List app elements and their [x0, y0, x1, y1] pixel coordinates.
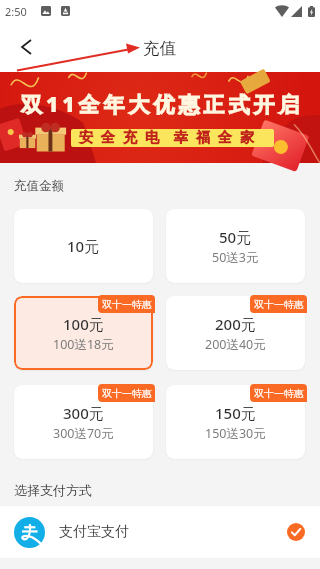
- staticText: 300元: [63, 403, 104, 423]
- staticText: 50元: [219, 227, 252, 247]
- staticText: 支付宝支付: [59, 523, 129, 541]
- staticText: 充值: [143, 38, 176, 59]
- staticText: 200元: [215, 314, 256, 334]
- staticText: 150送30元: [205, 425, 266, 442]
- staticText: 幸: [174, 129, 188, 147]
- button[interactable]: Back: [2, 23, 50, 71]
- staticText: 200送40元: [205, 336, 266, 353]
- staticText: 双十一特惠: [254, 298, 304, 311]
- staticText: 安: [79, 129, 93, 147]
- staticText: 2:50: [5, 4, 27, 19]
- staticText: 双十一特惠: [102, 387, 152, 400]
- staticText: 充值金额: [14, 178, 64, 194]
- staticText: 双11全年大优惠正式开启: [21, 90, 304, 119]
- staticText: 100元: [63, 314, 104, 334]
- staticText: 全: [218, 129, 232, 147]
- button[interactable]: 200元: [166, 296, 305, 370]
- button[interactable]: 100元: [14, 296, 153, 370]
- staticText: 福: [196, 129, 210, 147]
- staticText: 家: [240, 129, 254, 147]
- button[interactable]: 150元: [166, 385, 305, 459]
- button[interactable]: 10元: [14, 209, 153, 283]
- staticText: 100送18元: [53, 336, 114, 353]
- button[interactable]: 支付宝支付: [0, 506, 320, 558]
- staticText: 双十一特惠: [102, 298, 152, 311]
- staticText: 150元: [215, 403, 256, 423]
- staticText: 双十一特惠: [254, 387, 304, 400]
- staticText: 10元: [67, 236, 100, 256]
- staticText: 300送70元: [53, 425, 114, 442]
- staticText: 全: [101, 129, 115, 147]
- staticText: 50送3元: [212, 249, 259, 266]
- staticText: 选择支付方式: [14, 482, 92, 498]
- button[interactable]: 50元: [166, 209, 305, 283]
- staticText: 电: [145, 129, 159, 147]
- staticText: 充: [123, 129, 137, 147]
- button[interactable]: 300元: [14, 385, 153, 459]
